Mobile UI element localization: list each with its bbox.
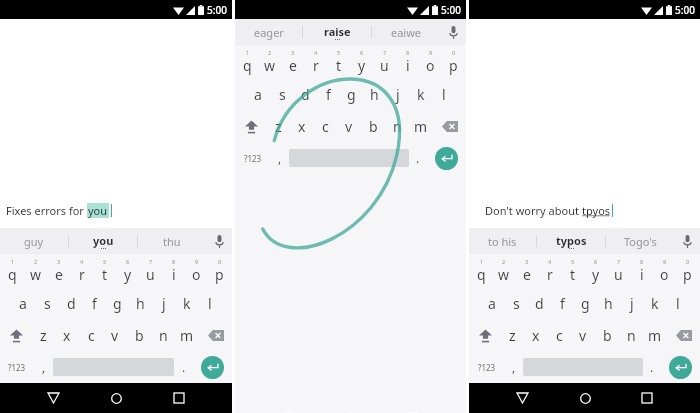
button[interactable]: 4 [538, 254, 561, 287]
button[interactable]: Home [105, 387, 127, 409]
button[interactable]: z [32, 320, 55, 351]
button[interactable]: eager [235, 19, 302, 45]
button[interactable]: b [127, 320, 151, 351]
button[interactable]: 7 [607, 254, 630, 287]
button[interactable]: f [551, 287, 574, 320]
button[interactable]: 8 [162, 254, 185, 287]
button[interactable]: b [595, 320, 619, 351]
button[interactable]: Home [574, 387, 596, 409]
button[interactable]: h [129, 287, 152, 320]
button[interactable]: Shift [0, 320, 32, 351]
button[interactable]: to his [469, 228, 536, 254]
button[interactable]: s [270, 78, 294, 111]
button[interactable]: ?123 [235, 142, 271, 174]
button[interactable]: ?123 [469, 351, 505, 383]
button[interactable]: d [294, 78, 317, 111]
button[interactable]: 3 [281, 45, 304, 78]
button[interactable]: x [55, 320, 79, 351]
button[interactable]: g [106, 287, 129, 320]
button[interactable]: 0 [442, 45, 465, 78]
button[interactable]: 5 [561, 254, 584, 287]
button[interactable]: x [290, 111, 313, 142]
button[interactable]: Back [511, 387, 533, 409]
button[interactable]: Recents [636, 387, 658, 409]
button[interactable]: s [35, 287, 59, 320]
button[interactable]: , [271, 142, 289, 174]
button[interactable]: 7 [373, 45, 396, 78]
button[interactable]: j [620, 287, 643, 320]
button[interactable]: 7 [139, 254, 162, 287]
button[interactable]: v [337, 111, 361, 142]
button[interactable]: you [69, 228, 137, 254]
button[interactable]: b [361, 111, 385, 142]
button[interactable]: d [59, 287, 83, 320]
button[interactable]: Shift [469, 320, 501, 351]
button[interactable]: Shift [235, 111, 267, 142]
button[interactable]: 1 [470, 254, 492, 287]
button[interactable]: k [643, 287, 666, 320]
button[interactable]: d [528, 287, 551, 320]
button[interactable]: f [317, 78, 340, 111]
button[interactable]: 3 [515, 254, 538, 287]
button[interactable]: k [175, 287, 198, 320]
button[interactable]: c [547, 320, 571, 351]
button[interactable]: Backspace [433, 111, 466, 142]
button[interactable]: l [432, 78, 455, 111]
button[interactable]: , [34, 351, 53, 383]
button[interactable]: g [340, 78, 363, 111]
button[interactable]: m [643, 320, 667, 351]
button[interactable]: 9 [653, 254, 676, 287]
button[interactable]: n [385, 111, 409, 142]
button[interactable]: Enter [669, 356, 692, 379]
button[interactable]: n [151, 320, 175, 351]
button[interactable]: 2 [492, 254, 515, 287]
button[interactable]: 8 [396, 45, 419, 78]
button[interactable]: h [363, 78, 386, 111]
button[interactable]: , [505, 351, 523, 383]
button[interactable]: 0 [208, 254, 231, 287]
button[interactable]: h [597, 287, 620, 320]
button[interactable]: 6 [116, 254, 139, 287]
button[interactable]: 6 [350, 45, 373, 78]
button[interactable]: m [175, 320, 199, 351]
button[interactable]: Enter [201, 356, 224, 379]
button[interactable]: g [574, 287, 597, 320]
button[interactable]: 2 [258, 45, 281, 78]
button[interactable]: typos [537, 228, 605, 254]
button[interactable]: 4 [304, 45, 327, 78]
button[interactable]: 0 [676, 254, 699, 287]
button[interactable]: . [174, 351, 193, 383]
button[interactable]: Back [42, 387, 64, 409]
button[interactable]: c [313, 111, 337, 142]
button[interactable]: l [666, 287, 689, 320]
button[interactable]: c [79, 320, 103, 351]
button[interactable]: . [643, 351, 661, 383]
button[interactable]: 9 [185, 254, 208, 287]
button[interactable]: 4 [70, 254, 93, 287]
button[interactable]: 9 [419, 45, 442, 78]
button[interactable]: 6 [584, 254, 607, 287]
button[interactable]: z [267, 111, 290, 142]
button[interactable]: l [198, 287, 221, 320]
button[interactable]: raise [303, 19, 371, 45]
button[interactable]: Backspace [667, 320, 700, 351]
button[interactable]: x [524, 320, 547, 351]
button[interactable]: Voice input [206, 228, 232, 254]
button[interactable]: Voice input [440, 19, 466, 45]
button[interactable]: 1 [1, 254, 24, 287]
button[interactable]: 1 [236, 45, 258, 78]
button[interactable]: v [103, 320, 127, 351]
button[interactable]: Voice input [674, 228, 700, 254]
button[interactable]: . [409, 142, 427, 174]
button[interactable]: a [11, 287, 35, 320]
button[interactable]: Backspace [199, 320, 232, 351]
button[interactable]: a [246, 78, 270, 111]
button[interactable]: a [480, 287, 504, 320]
button[interactable]: 3 [47, 254, 70, 287]
button[interactable]: Togo's [606, 228, 674, 254]
button[interactable]: f [83, 287, 106, 320]
button[interactable]: eaiwe [372, 19, 440, 45]
button[interactable]: z [501, 320, 524, 351]
